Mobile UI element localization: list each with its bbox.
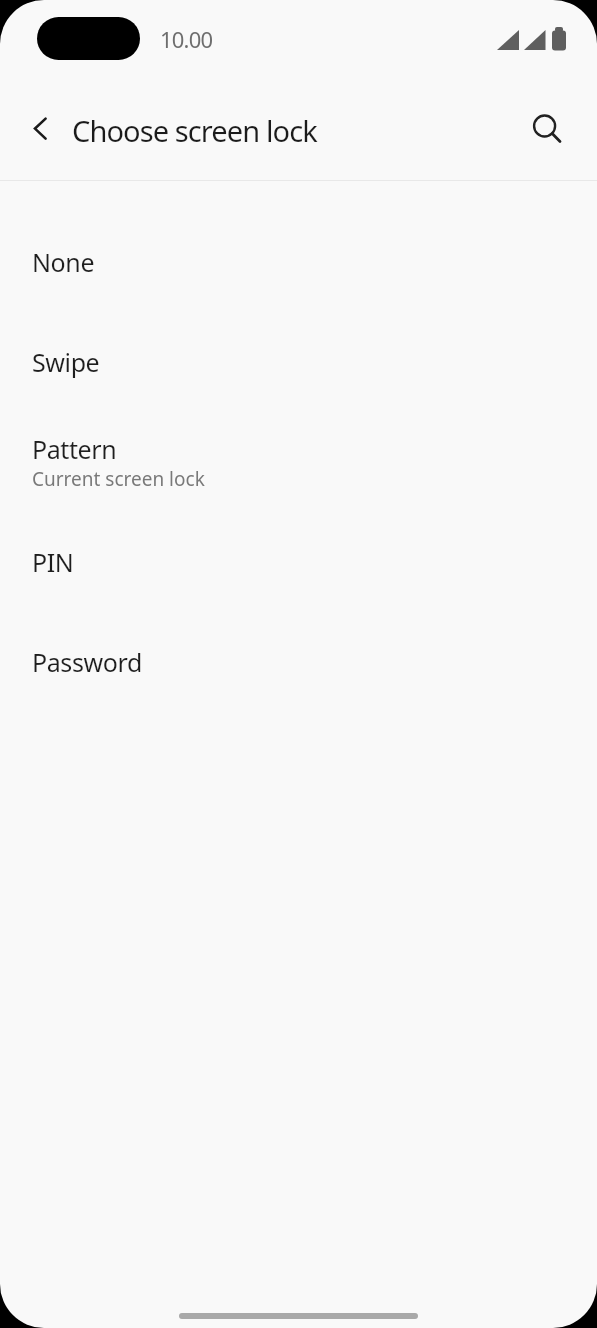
staticText: Swipe — [32, 345, 100, 379]
button[interactable] — [525, 108, 569, 152]
staticText: 10.00 — [160, 24, 213, 54]
staticText: Choose screen lock — [72, 111, 317, 150]
button[interactable] — [22, 112, 58, 148]
button[interactable]: PIN — [0, 512, 597, 612]
button[interactable]: Pattern — [0, 412, 597, 512]
button[interactable]: None — [0, 212, 597, 312]
staticText: None — [32, 245, 95, 279]
staticText: PIN — [32, 545, 74, 579]
staticText: Password — [32, 645, 142, 679]
button[interactable]: Password — [0, 612, 597, 712]
staticText: Pattern — [32, 432, 117, 466]
button[interactable]: Swipe — [0, 312, 597, 412]
staticText: Current screen lock — [32, 466, 205, 492]
